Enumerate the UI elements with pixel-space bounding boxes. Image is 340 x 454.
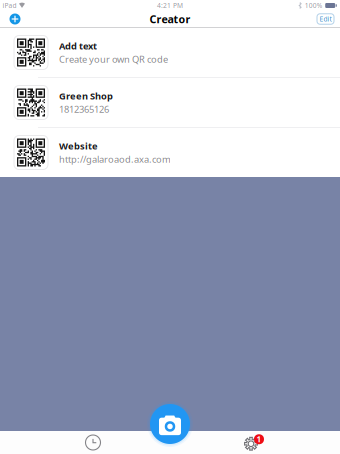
staticText: 1812365126 <box>59 103 109 115</box>
button[interactable]: Settings <box>227 431 281 454</box>
button[interactable]: Website <box>0 128 340 177</box>
button[interactable]: Take photo <box>147 401 193 447</box>
staticText: 100% <box>305 1 323 10</box>
staticText: iPad <box>2 1 16 10</box>
button[interactable]: Add text <box>0 28 340 77</box>
button[interactable]: Add <box>0 11 25 26</box>
staticText: Website <box>59 140 98 152</box>
button[interactable]: Green Shop <box>0 78 340 127</box>
staticText: 4:21 PM <box>157 1 183 10</box>
staticText: 1 <box>256 434 261 444</box>
staticText: Edit <box>319 15 331 23</box>
button[interactable]: Edit <box>317 14 340 24</box>
staticText: Green Shop <box>59 90 113 102</box>
staticText: Creator <box>149 12 190 26</box>
staticText: Add text <box>59 40 97 52</box>
staticText: Create your own QR code <box>59 53 168 65</box>
button[interactable]: History <box>66 431 120 454</box>
staticText: http://galaroaod.axa.com <box>59 153 171 165</box>
